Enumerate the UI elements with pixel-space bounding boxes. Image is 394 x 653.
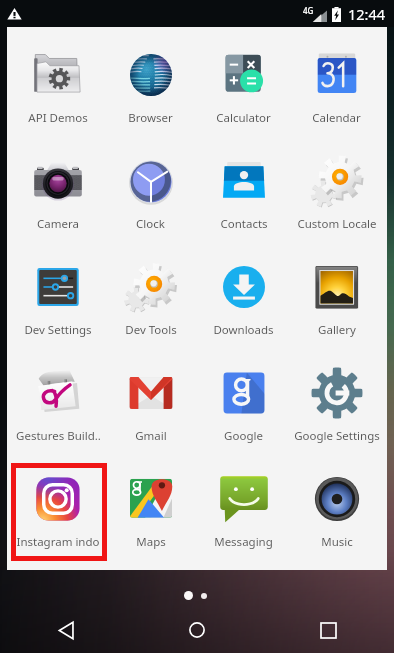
button[interactable]: Clock	[104, 147, 197, 253]
staticText: Downloads	[213, 322, 274, 338]
staticText: Messaging	[214, 534, 273, 550]
button[interactable]: Recents	[300, 607, 356, 653]
button[interactable]: Gmail	[104, 359, 197, 465]
staticText: Calendar	[312, 110, 361, 126]
staticText: Gmail	[135, 428, 167, 444]
staticText: Contacts	[220, 216, 268, 232]
button[interactable]: Gestures Build..	[12, 359, 104, 465]
staticText: Camera	[37, 216, 79, 232]
staticText: Browser	[128, 110, 173, 126]
staticText: Gallery	[318, 322, 356, 338]
staticText: Google Settings	[294, 428, 380, 444]
button[interactable]: Calculator	[197, 41, 290, 147]
staticText: Custom Locale	[297, 216, 377, 232]
staticText: 12:44	[348, 4, 386, 24]
staticText: Dev Settings	[24, 322, 92, 338]
button[interactable]: Gallery	[290, 253, 383, 359]
button[interactable]: Music	[290, 465, 383, 570]
button[interactable]: Messaging	[197, 465, 290, 570]
button[interactable]: Contacts	[197, 147, 290, 253]
button[interactable]: Instagram indo	[12, 465, 104, 570]
button[interactable]: Google	[197, 359, 290, 465]
button[interactable]: Back	[38, 607, 94, 653]
staticText: Google	[224, 428, 263, 444]
button[interactable]: Google Settings	[290, 359, 383, 465]
staticText: Clock	[136, 216, 165, 232]
other: Warning	[7, 6, 22, 21]
staticText: 4G	[303, 5, 314, 16]
button[interactable]: API Demos	[12, 41, 104, 147]
button[interactable]: Browser	[104, 41, 197, 147]
button[interactable]: Camera	[12, 147, 104, 253]
staticText: Instagram indo	[16, 534, 100, 550]
button[interactable]: Dev Settings	[12, 253, 104, 359]
staticText: Music	[321, 534, 353, 550]
button[interactable]: Home	[169, 607, 225, 653]
staticText: Gestures Build..	[16, 428, 101, 444]
button[interactable]: Downloads	[197, 253, 290, 359]
button[interactable]: Custom Locale	[290, 147, 383, 253]
staticText: Dev Tools	[125, 322, 177, 338]
button[interactable]: Maps	[104, 465, 197, 570]
staticText: Maps	[136, 534, 166, 550]
staticText: API Demos	[28, 110, 88, 126]
button[interactable]: Dev Tools	[104, 253, 197, 359]
button[interactable]: Calendar	[290, 41, 383, 147]
staticText: Calculator	[216, 110, 271, 126]
